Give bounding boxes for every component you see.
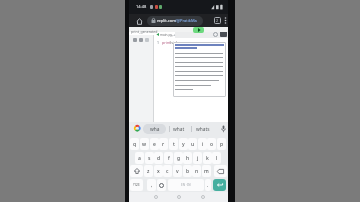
button[interactable]: wha: [143, 124, 166, 134]
staticText: wha: [150, 126, 160, 133]
button[interactable]: [220, 31, 227, 37]
button[interactable]: d: [154, 152, 163, 164]
staticText: 1: [157, 40, 160, 45]
staticText: y: [182, 141, 185, 148]
staticText: main.py: [160, 33, 172, 37]
staticText: (str(: [170, 40, 178, 45]
button[interactable]: [147, 16, 203, 26]
staticText: n: [195, 168, 199, 175]
staticText: EN · IN: [181, 183, 191, 187]
button[interactable]: e: [150, 138, 159, 150]
staticText: o: [210, 141, 214, 148]
button[interactable]: c: [163, 165, 172, 177]
staticText: m: [204, 168, 209, 175]
button[interactable]: r: [159, 138, 168, 150]
button[interactable]: 2: [214, 17, 221, 24]
button[interactable]: .: [205, 179, 211, 191]
staticText: d: [157, 155, 161, 162]
staticText: print_generated: [131, 29, 158, 34]
staticText: ×: [171, 33, 174, 38]
staticText: 14:48: [136, 4, 147, 9]
button[interactable]: z: [144, 165, 153, 177]
button[interactable]: x: [154, 165, 163, 177]
button[interactable]: g: [174, 152, 183, 164]
button[interactable]: v: [173, 165, 182, 177]
button[interactable]: [154, 195, 158, 199]
staticText: 2: [216, 18, 219, 23]
staticText: c: [166, 168, 169, 175]
button[interactable]: k: [203, 152, 212, 164]
staticText: i: [202, 141, 204, 148]
button[interactable]: l: [212, 152, 221, 164]
button[interactable]: [139, 38, 143, 42]
button[interactable]: [213, 32, 218, 37]
staticText: t: [173, 141, 175, 148]
staticText: .: [207, 182, 209, 189]
button[interactable]: whats: [194, 124, 212, 134]
staticText: l: [216, 155, 218, 162]
button[interactable]: q: [130, 138, 139, 150]
staticText: u: [191, 141, 195, 148]
button[interactable]: ?123: [130, 179, 143, 191]
staticText: k: [206, 155, 209, 162]
staticText: s: [148, 155, 151, 162]
button[interactable]: main.py: [154, 31, 175, 38]
button[interactable]: y: [179, 138, 188, 150]
button[interactable]: [130, 165, 143, 177]
button[interactable]: u: [188, 138, 197, 150]
button[interactable]: j: [193, 152, 202, 164]
staticText: ,: [151, 182, 153, 189]
button[interactable]: EN · IN: [168, 179, 204, 191]
button[interactable]: n: [192, 165, 201, 177]
button[interactable]: t: [169, 138, 178, 150]
staticText: h: [186, 155, 190, 162]
staticText: j: [197, 155, 199, 162]
staticText: g: [177, 155, 181, 162]
staticText: v: [176, 168, 179, 175]
button[interactable]: f: [164, 152, 173, 164]
staticText: w: [142, 141, 147, 148]
staticText: r: [162, 141, 165, 148]
button[interactable]: m: [202, 165, 211, 177]
button[interactable]: p: [217, 138, 226, 150]
button[interactable]: [145, 38, 149, 42]
button[interactable]: o: [207, 138, 216, 150]
button[interactable]: [157, 179, 166, 191]
staticText: e: [153, 141, 156, 148]
button[interactable]: [201, 195, 205, 199]
staticText: +: [173, 32, 176, 37]
staticText: x: [157, 168, 160, 175]
button[interactable]: b: [183, 165, 192, 177]
button[interactable]: [214, 165, 227, 177]
staticText: a: [138, 155, 141, 162]
staticText: what: [173, 126, 185, 133]
button[interactable]: i: [198, 138, 207, 150]
staticText: ?123: [133, 183, 140, 187]
staticText: q: [133, 141, 137, 148]
button[interactable]: [133, 38, 137, 42]
button[interactable]: s: [145, 152, 154, 164]
staticText: whats: [196, 126, 210, 133]
button[interactable]: h: [183, 152, 192, 164]
staticText: p: [220, 141, 224, 148]
staticText: z: [147, 168, 150, 175]
button[interactable]: [193, 27, 204, 33]
staticText: b: [186, 168, 190, 175]
button[interactable]: [213, 179, 226, 191]
button[interactable]: ,: [147, 179, 156, 191]
button[interactable]: w: [140, 138, 149, 150]
staticText: /@PratikMa: [175, 18, 197, 23]
staticText: f: [168, 155, 170, 162]
staticText: replit.com: [157, 18, 176, 23]
staticText: print: [162, 40, 171, 45]
button[interactable]: [177, 195, 181, 199]
button[interactable]: a: [135, 152, 144, 164]
button[interactable]: what: [171, 124, 187, 134]
